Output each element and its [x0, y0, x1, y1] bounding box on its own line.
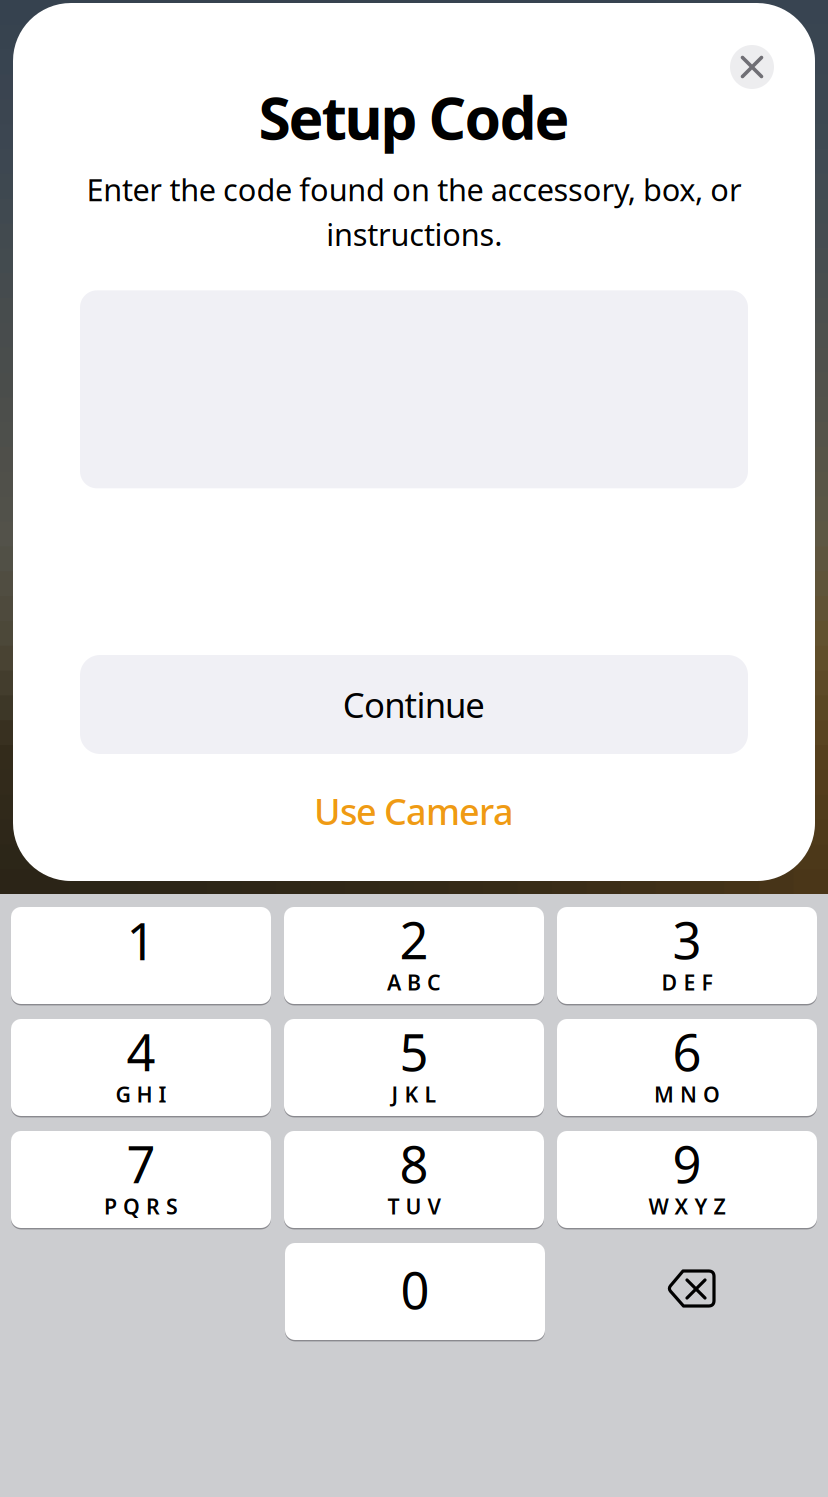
staticText: 0	[400, 1256, 429, 1323]
staticText: Use Camera	[314, 787, 514, 835]
staticText: J K L	[391, 1080, 436, 1108]
button[interactable]: 0	[285, 1243, 545, 1340]
staticText: 1	[126, 907, 155, 974]
staticText: 4	[126, 1018, 155, 1085]
button[interactable]: 9	[557, 1131, 817, 1228]
button[interactable]: 4	[11, 1019, 271, 1116]
staticText: 8	[399, 1130, 428, 1197]
button[interactable]: 6	[557, 1019, 817, 1116]
button[interactable]: 2	[284, 907, 544, 1004]
button[interactable]: 3	[557, 907, 817, 1004]
button[interactable]: Continue	[80, 655, 748, 754]
staticText: P Q R S	[104, 1192, 178, 1220]
staticText: W X Y Z	[648, 1192, 725, 1220]
staticText: 5	[399, 1018, 428, 1085]
button[interactable]: 5	[284, 1019, 544, 1116]
staticText: D E F	[661, 968, 712, 996]
button[interactable]: Delete	[643, 1243, 737, 1340]
button[interactable]: 7	[11, 1131, 271, 1228]
button[interactable]: Close	[718, 33, 786, 101]
staticText: 3	[672, 906, 701, 973]
staticText: Continue	[343, 681, 485, 727]
staticText: Setup Code	[258, 78, 569, 156]
staticText: 2	[399, 906, 428, 973]
button[interactable]: 8	[284, 1131, 544, 1228]
staticText: G H I	[115, 1080, 166, 1108]
button[interactable]: 1	[11, 907, 271, 1004]
button[interactable]: Use Camera	[80, 786, 748, 836]
staticText: 9	[672, 1130, 701, 1197]
staticText: M N O	[654, 1080, 720, 1108]
staticText: Enter the code found on the accessory, b…	[86, 169, 742, 254]
staticText: T U V	[387, 1192, 440, 1220]
staticText: 6	[672, 1018, 701, 1085]
staticText: A B C	[387, 968, 441, 996]
staticText: 7	[126, 1130, 155, 1197]
